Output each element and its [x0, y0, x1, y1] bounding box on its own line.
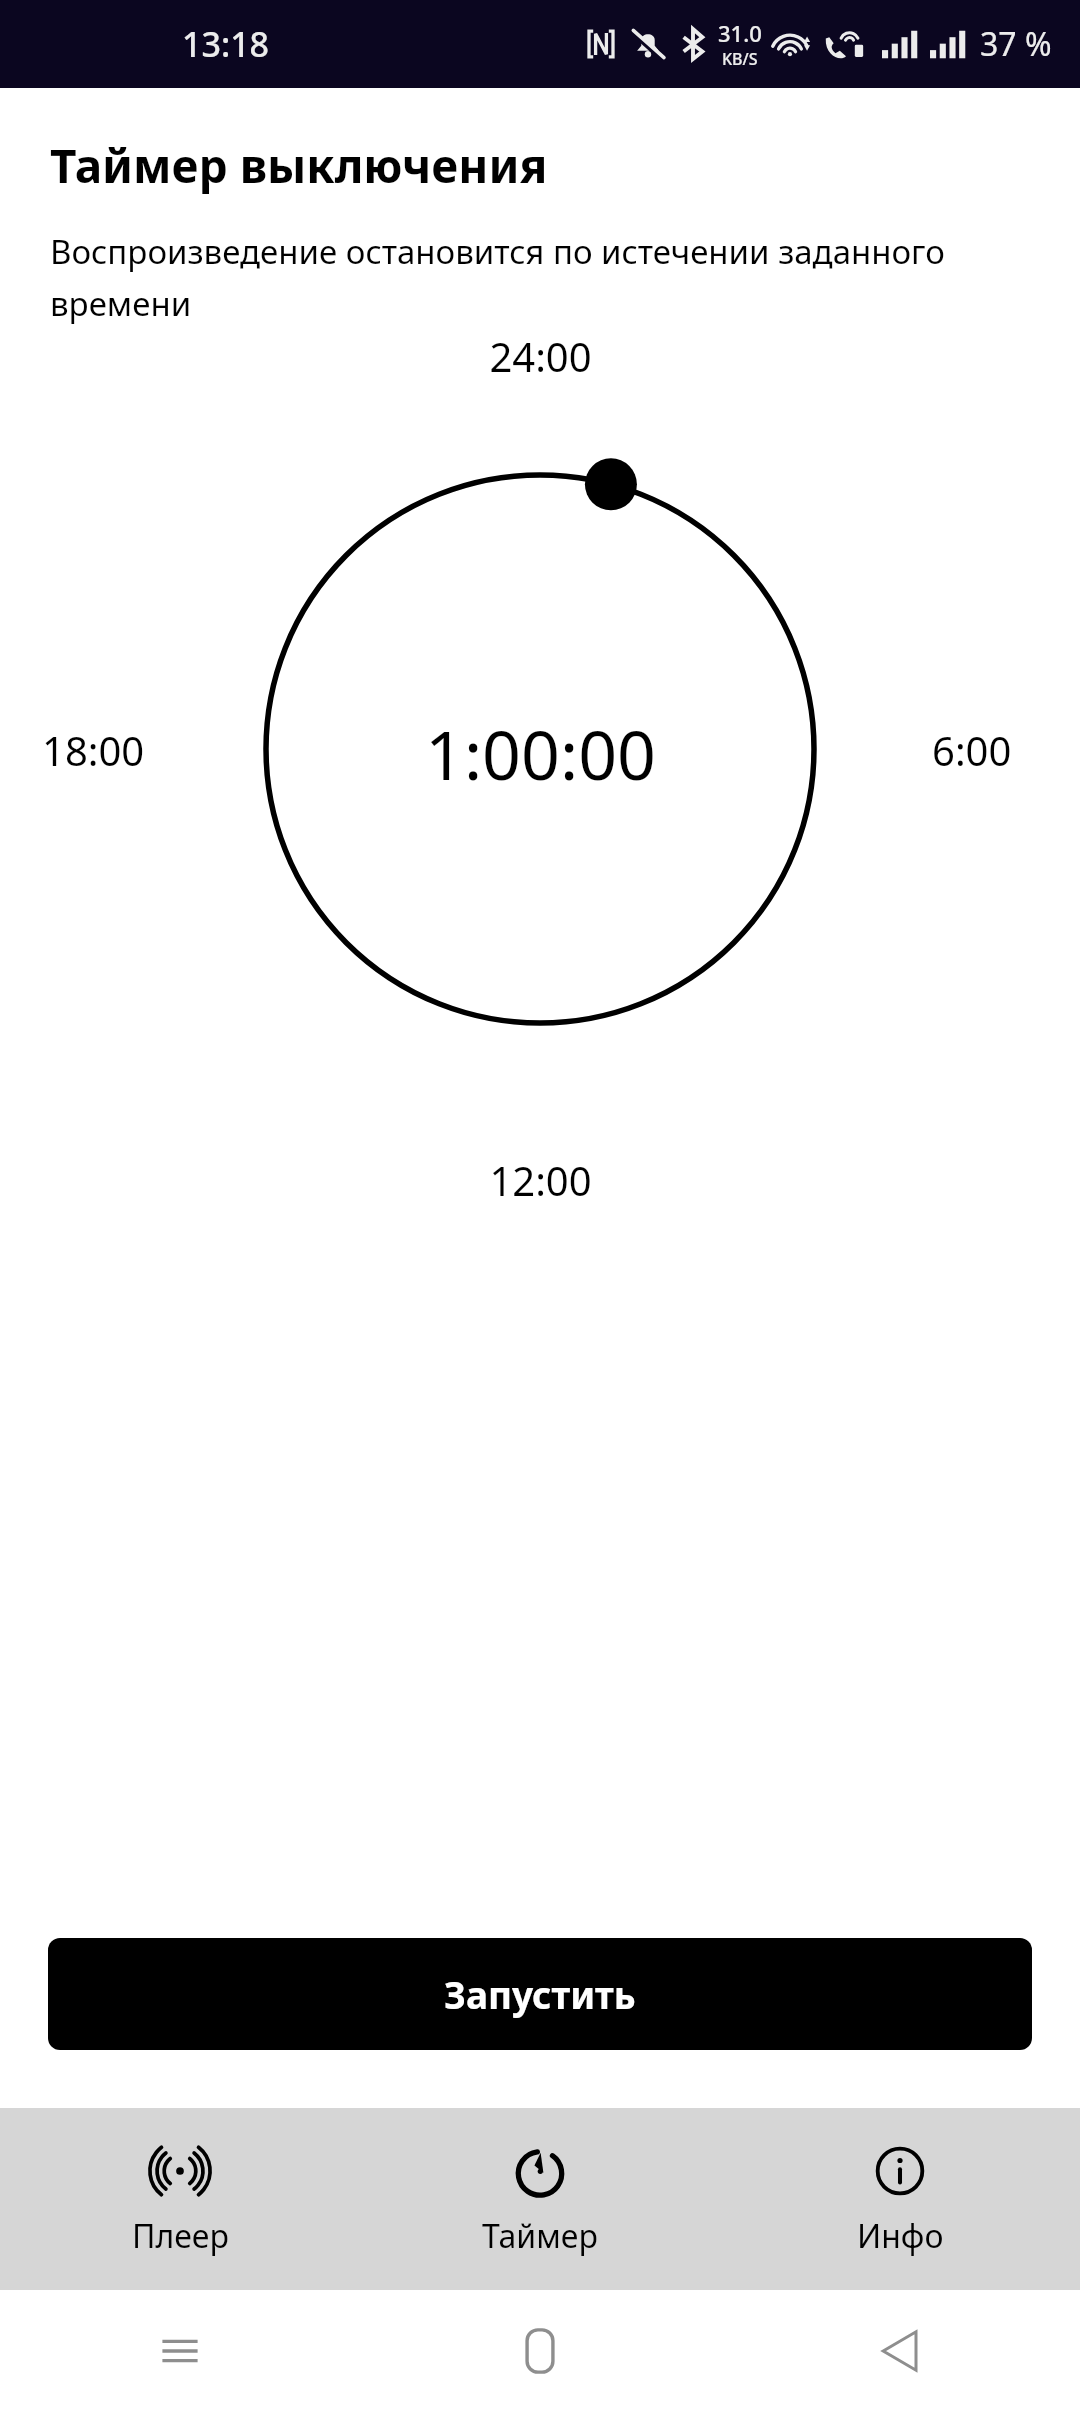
staticText: Инфо	[857, 2214, 944, 2258]
staticText: 24:00	[489, 329, 592, 383]
button[interactable]: Плеер	[0, 2108, 360, 2290]
staticText: Таймер	[482, 2214, 598, 2258]
staticText: 12:00	[489, 1153, 592, 1207]
staticText: Запустить	[444, 1969, 636, 2019]
staticText: 37 %	[980, 22, 1052, 66]
staticText: Воспроизведение остановится по истечении…	[50, 229, 1038, 325]
button[interactable]: Recent apps	[0, 2290, 360, 2412]
staticText: 18:00	[42, 723, 145, 777]
staticText: 13:18	[182, 21, 270, 67]
button[interactable]: Таймер	[360, 2108, 720, 2290]
button[interactable]: Инфо	[720, 2108, 1080, 2290]
staticText: Таймер выключения	[50, 134, 548, 197]
staticText: Плеер	[132, 2214, 229, 2258]
staticText: 31.0	[718, 18, 762, 48]
staticText: KB/S	[722, 48, 758, 70]
button[interactable]: Back	[720, 2290, 1080, 2412]
button[interactable]: Home	[360, 2290, 720, 2412]
button[interactable]: Запустить	[48, 1938, 1032, 2050]
staticText: 1:00:00	[425, 707, 656, 800]
staticText: 6:00	[932, 723, 1012, 777]
